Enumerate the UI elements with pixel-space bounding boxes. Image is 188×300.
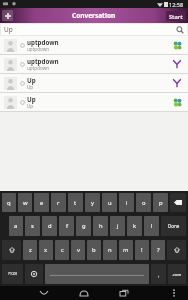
button[interactable]: a — [9, 216, 23, 236]
staticText: d — [48, 222, 52, 230]
button[interactable]: b — [87, 240, 101, 260]
staticText: l — [151, 222, 153, 230]
staticText: y — [91, 199, 94, 207]
staticText: x — [44, 246, 48, 254]
staticText: r — [57, 199, 60, 207]
staticText: Up — [27, 84, 34, 90]
staticText: ?123 — [8, 271, 18, 277]
staticText: Done — [168, 223, 180, 229]
staticText: uptpdown — [27, 38, 59, 46]
button[interactable]: Symbols — [2, 264, 23, 284]
button[interactable]: s — [25, 216, 40, 236]
button[interactable]: u — [102, 193, 117, 212]
button[interactable]: uptpdown — [0, 55, 188, 73]
staticText: k — [133, 222, 137, 230]
staticText: g — [82, 222, 86, 230]
staticText: Conversation — [72, 11, 116, 20]
staticText: ! — [141, 246, 143, 254]
staticText: u — [108, 199, 112, 207]
button[interactable]: More options — [166, 286, 181, 300]
other: Search — [176, 26, 184, 34]
button[interactable]: .com — [168, 264, 186, 284]
button[interactable]: y — [85, 193, 100, 212]
button[interactable]: Menu — [2, 10, 13, 21]
staticText: ? — [157, 246, 160, 254]
button[interactable]: x — [39, 240, 53, 260]
staticText: h — [99, 222, 103, 230]
staticText: q — [7, 199, 11, 207]
button[interactable]: h — [93, 216, 108, 236]
button[interactable]: Recents — [113, 286, 135, 300]
button[interactable]: r — [51, 193, 66, 212]
button[interactable]: t — [68, 193, 83, 212]
staticText: v — [77, 246, 80, 254]
staticText: 12:58 — [169, 1, 184, 8]
staticText: f — [66, 222, 68, 230]
button[interactable]: e — [34, 193, 49, 212]
staticText: i — [126, 199, 128, 207]
staticText: o — [142, 199, 146, 207]
staticText: Up — [4, 25, 13, 34]
button[interactable]: l — [144, 216, 159, 236]
staticText: .com — [172, 272, 182, 277]
staticText: Up — [27, 95, 36, 103]
staticText: j — [117, 222, 119, 230]
button[interactable]: Up — [1, 24, 187, 35]
button[interactable]: Up — [0, 93, 188, 111]
button[interactable]: n — [103, 240, 117, 260]
button[interactable]: w — [18, 193, 32, 212]
button[interactable]: f — [59, 216, 74, 236]
button[interactable]: uptpdown — [0, 36, 188, 54]
button[interactable]: Shift — [167, 240, 186, 260]
button[interactable]: ! — [135, 240, 149, 260]
staticText: e — [40, 199, 44, 207]
staticText: n — [108, 246, 112, 254]
button[interactable]: c — [55, 240, 69, 260]
staticText: b — [92, 246, 96, 254]
button[interactable]: g — [76, 216, 91, 236]
button[interactable]: Back — [33, 286, 55, 300]
button[interactable]: k — [127, 216, 142, 236]
staticText: uptpdown — [27, 57, 59, 65]
button[interactable]: z — [23, 240, 37, 260]
button[interactable]: Home — [73, 286, 95, 300]
staticText: a — [14, 222, 18, 230]
staticText: Up — [27, 76, 36, 84]
staticText: uptpdown — [27, 46, 50, 52]
button[interactable]: ? — [151, 240, 165, 260]
button[interactable]: q — [2, 193, 16, 212]
staticText: m — [123, 246, 129, 254]
staticText: p — [159, 199, 163, 207]
staticText: s — [31, 222, 34, 230]
button[interactable]: v — [71, 240, 85, 260]
button[interactable]: p — [153, 193, 168, 212]
button[interactable]: o — [136, 193, 151, 212]
staticText: , — [158, 271, 160, 278]
button[interactable]: d — [42, 216, 57, 236]
button[interactable]: , — [151, 264, 166, 284]
button[interactable]: i — [119, 193, 134, 212]
staticText: z — [29, 246, 32, 254]
staticText: w — [23, 199, 28, 207]
button[interactable]: j — [110, 216, 125, 236]
staticText: Start — [169, 13, 183, 20]
button[interactable]: Up — [0, 74, 188, 92]
button[interactable]: Space — [45, 264, 149, 284]
staticText: Up — [27, 103, 34, 109]
button[interactable]: m — [119, 240, 133, 260]
staticText: t — [74, 199, 77, 207]
button[interactable]: Start — [166, 11, 186, 21]
button[interactable]: Backspace — [170, 193, 186, 212]
button[interactable]: Done — [161, 216, 186, 236]
button[interactable]: Emoji — [25, 264, 43, 284]
button[interactable]: Shift — [2, 240, 21, 260]
staticText: c — [61, 246, 64, 254]
staticText: uptpdown — [27, 65, 50, 71]
